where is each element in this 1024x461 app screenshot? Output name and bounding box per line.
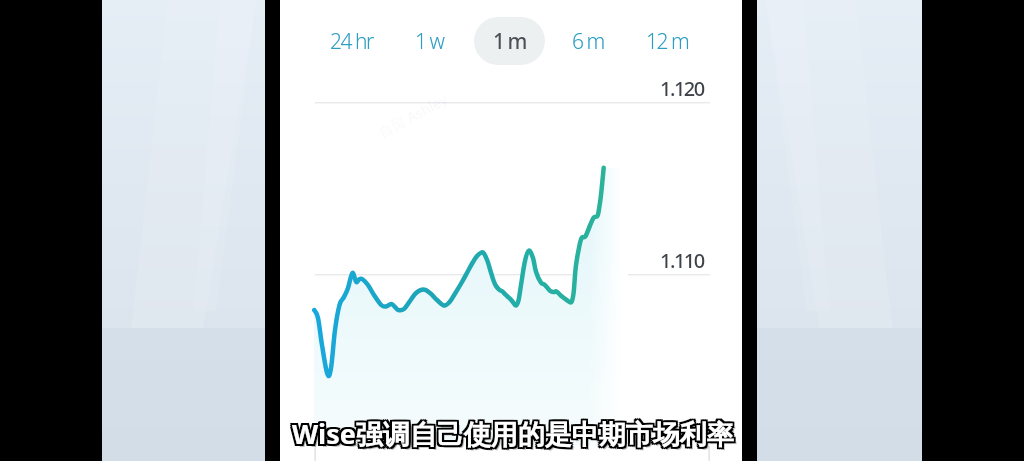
staticText: Wise强调自己使用的是中期市场利率 <box>292 417 734 454</box>
staticText: 6 m <box>572 27 604 56</box>
staticText: 24 hr <box>330 27 373 56</box>
button[interactable]: 1 m <box>474 17 545 65</box>
staticText: Wise强调自己使用的是中期市场利率 <box>294 413 736 450</box>
button[interactable]: 24 hr <box>317 17 385 65</box>
staticText: Wise强调自己使用的是中期市场利率 <box>290 413 732 450</box>
staticText: 12 m <box>646 27 689 56</box>
staticText: Wise强调自己使用的是中期市场利率 <box>292 415 734 452</box>
staticText: Wise强调自己使用的是中期市场利率 <box>295 418 737 455</box>
button[interactable]: 6 m <box>554 17 622 65</box>
button[interactable]: 1 w <box>395 17 463 65</box>
staticText: Wise强调自己使用的是中期市场利率 <box>292 413 734 450</box>
button[interactable]: 12 m <box>633 17 701 65</box>
staticText: 1 m <box>493 27 526 56</box>
staticText: Wise强调自己使用的是中期市场利率 <box>290 415 732 452</box>
staticText: Wise强调自己使用的是中期市场利率 <box>294 415 736 452</box>
staticText: Wise强调自己使用的是中期市场利率 <box>294 417 736 454</box>
staticText: 自留 Ashley <box>375 89 451 142</box>
staticText: 1.120 <box>660 75 704 102</box>
staticText: 1 w <box>415 27 444 56</box>
staticText: 1.110 <box>660 247 704 274</box>
staticText: Wise强调自己使用的是中期市场利率 <box>290 417 732 454</box>
